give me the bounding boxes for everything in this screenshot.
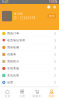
button[interactable]: 收货地址管理 [0,37,59,44]
staticText: 张小明 [14,12,23,16]
staticText: 优惠券 [7,53,16,56]
button[interactable]: 意见反馈 [0,72,59,79]
staticText: 购物车 [32,94,41,98]
button[interactable]: 分类 [15,87,30,100]
button[interactable]: 设置 [0,79,59,86]
staticText: 100% [49,0,57,4]
staticText: 签到 [49,14,55,18]
staticText: 设置 [7,81,13,84]
button[interactable]: 优惠券 [0,51,59,58]
staticText: 我的订单 [7,32,19,35]
staticText: 9:41 [2,0,9,4]
staticText: 分类 [19,94,25,98]
staticText: 在线客服 [7,67,19,70]
staticText: 我的收藏 [7,46,19,49]
staticText: 首页 [4,94,10,98]
button[interactable]: Settings [47,5,51,9]
staticText: 收货地址管理 [7,39,25,42]
button[interactable]: 我的积分 [0,58,59,65]
button[interactable]: 首页 [0,87,15,100]
button[interactable]: 我的收藏 [0,44,59,51]
staticText: 意见反馈 [7,74,19,77]
button[interactable]: 我的订单 [0,30,59,37]
staticText: ID：12345678 [14,16,36,20]
button[interactable]: Messages [51,6,56,8]
staticText: 我的 [49,94,55,98]
button[interactable]: 签到 [47,14,57,18]
button[interactable]: 购物车 [29,87,44,100]
button[interactable]: 在线客服 [0,65,59,72]
button[interactable]: 我的 [44,87,59,100]
staticText: 我的积分 [7,60,19,63]
